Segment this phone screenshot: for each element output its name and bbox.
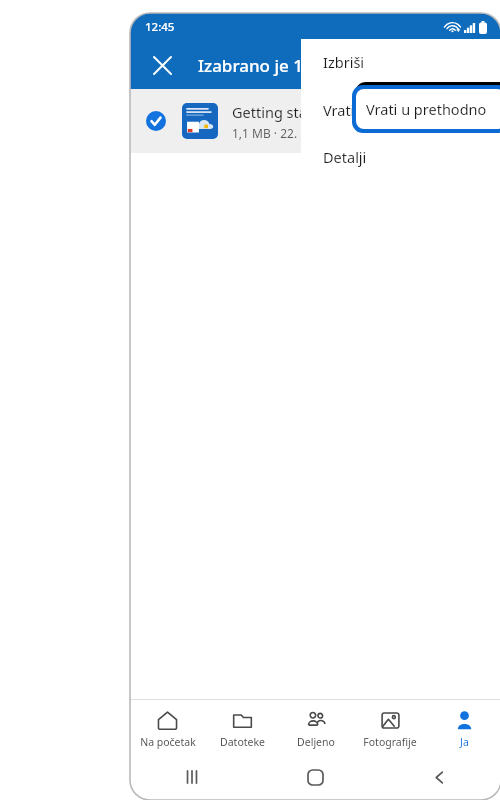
staticText: 12:45: [145, 19, 175, 35]
button[interactable]: Detalji: [301, 135, 500, 179]
staticText: Fotografije: [363, 735, 417, 749]
button[interactable]: Nedavno: [130, 754, 253, 800]
staticText: Vrati u prethodno stanje: [323, 100, 489, 120]
button[interactable]: Nazad: [377, 754, 500, 800]
staticText: Izbriši: [323, 52, 365, 72]
staticText: Izabrano je 1: [198, 54, 303, 77]
button[interactable]: Na početak: [130, 705, 205, 749]
button[interactable]: Ja: [427, 705, 500, 749]
button[interactable]: Vrati u prethodno stanje: [301, 85, 500, 135]
button[interactable]: Deljeno: [279, 705, 353, 749]
button[interactable]: Zatvori: [142, 45, 182, 85]
staticText: Ja: [460, 735, 469, 749]
staticText: Deljeno: [297, 735, 335, 749]
button[interactable]: Vrati u prethodno stanje: [356, 89, 500, 129]
button[interactable]: Početni ekran: [253, 754, 377, 800]
button[interactable]: Fotografije: [353, 705, 427, 749]
staticText: Datoteke: [220, 735, 265, 749]
staticText: Getting started with OneDrive: [232, 102, 437, 122]
button[interactable]: Getting started with OneDrive: [130, 89, 500, 153]
staticText: Vrati u prethodno stanje: [366, 99, 500, 119]
button[interactable]: Izbriši: [301, 39, 500, 85]
button[interactable]: Datoteke: [205, 705, 279, 749]
staticText: Na početak: [140, 735, 196, 749]
staticText: 1,1 MB · 22. 1. 2021.: [232, 125, 345, 141]
staticText: Detalji: [323, 147, 367, 167]
